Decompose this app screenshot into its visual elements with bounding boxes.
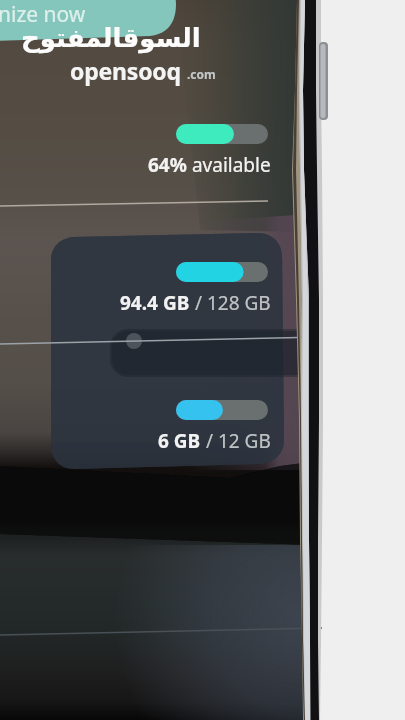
staticText: السوقالمفتوح (21, 23, 201, 53)
staticText: available (187, 152, 271, 178)
staticText: 64% (148, 152, 187, 178)
staticText: / 128 GB (190, 290, 271, 316)
staticText: 94.4 GB (120, 290, 190, 316)
staticText: 6 GB (158, 428, 201, 454)
staticText: opensooq (70, 55, 181, 86)
staticText: .com (187, 66, 216, 82)
staticText: nize now (0, 0, 86, 29)
staticText: / 12 GB (201, 428, 271, 454)
